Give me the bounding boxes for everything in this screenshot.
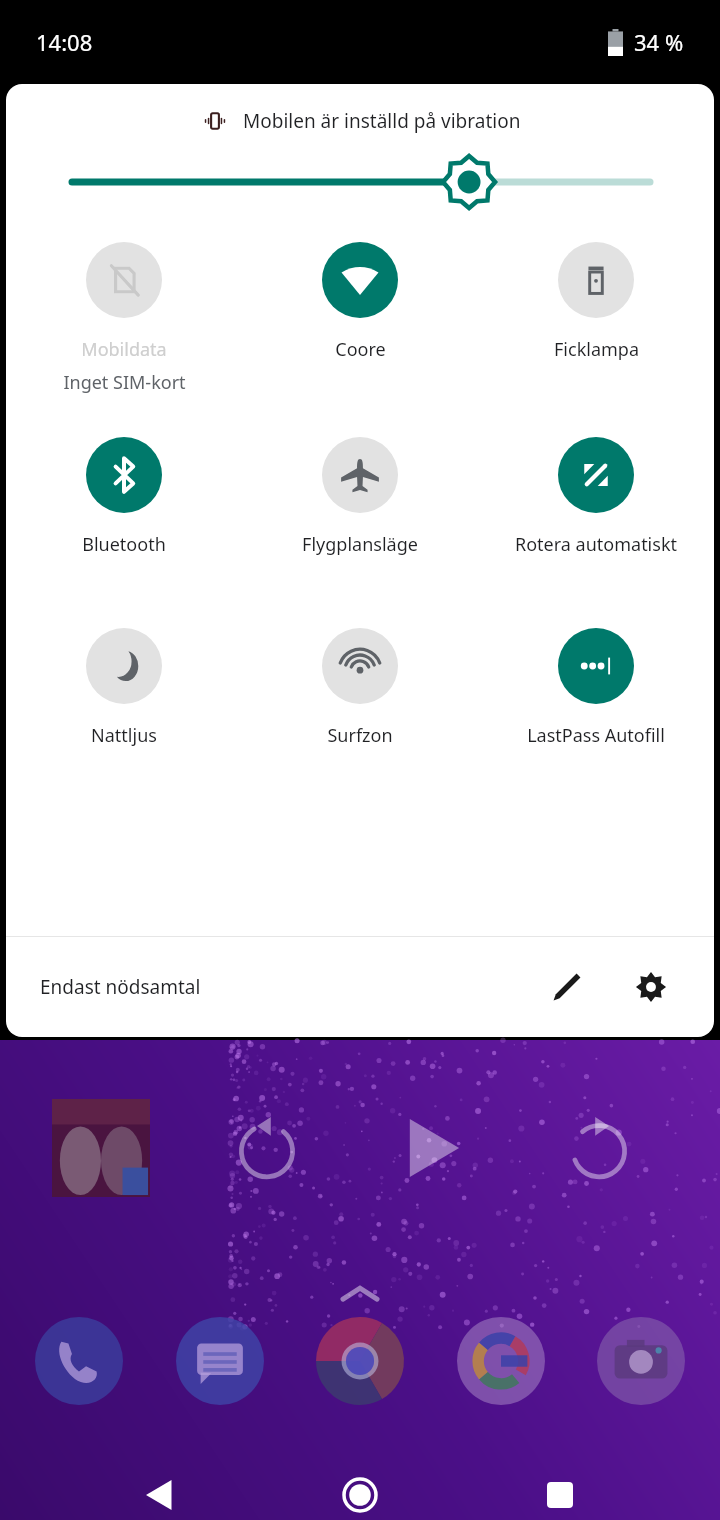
- button[interactable]: Ficklampa: [478, 242, 714, 362]
- button[interactable]: LastPass Autofill: [478, 628, 714, 748]
- staticText: Bluetooth: [82, 532, 166, 557]
- button[interactable]: Rotera automatiskt: [478, 437, 714, 557]
- staticText: Nattljus: [91, 723, 157, 748]
- button[interactable]: Settings: [622, 958, 680, 1016]
- button[interactable]: Recent apps: [521, 1456, 599, 1520]
- button[interactable]: Mobilen är inställd på vibration: [6, 106, 714, 136]
- button[interactable]: Rewind 20 seconds: [224, 1105, 310, 1191]
- staticText: Mobildata: [81, 337, 167, 362]
- staticText: Flygplansläge: [302, 532, 418, 557]
- button[interactable]: Play: [383, 1098, 483, 1198]
- button[interactable]: Mobildata: [6, 242, 242, 395]
- button[interactable]: Google: [456, 1316, 546, 1406]
- button[interactable]: Flygplansläge: [242, 437, 478, 557]
- staticText: Coore: [335, 337, 386, 362]
- button[interactable]: Chrome: [315, 1316, 405, 1406]
- staticText: 14:08: [36, 27, 93, 57]
- staticText: Surfzon: [327, 723, 393, 748]
- staticText: LastPass Autofill: [527, 723, 665, 748]
- button[interactable]: Nattljus: [6, 628, 242, 748]
- button[interactable]: Bluetooth: [6, 437, 242, 557]
- button[interactable]: Back: [122, 1456, 200, 1520]
- button[interactable]: Brightness: [6, 158, 714, 206]
- button[interactable]: Camera: [596, 1316, 686, 1406]
- staticText: Endast nödsamtal: [40, 974, 201, 1000]
- staticText: Inget SIM-kort: [63, 370, 186, 395]
- button[interactable]: Coore: [242, 242, 478, 362]
- staticText: 34 %: [634, 27, 684, 57]
- button[interactable]: Edit tiles: [538, 958, 596, 1016]
- button[interactable]: Surfzon: [242, 628, 478, 748]
- staticText: Ficklampa: [554, 337, 639, 362]
- button[interactable]: Messages: [175, 1316, 265, 1406]
- button[interactable]: Phone: [34, 1316, 124, 1406]
- button[interactable]: Endast nödsamtal: [40, 974, 201, 1000]
- staticText: Rotera automatiskt: [515, 532, 677, 557]
- button[interactable]: Forward 60 seconds: [556, 1105, 642, 1191]
- staticText: Mobilen är inställd på vibration: [243, 108, 521, 134]
- button[interactable]: Home: [321, 1456, 399, 1520]
